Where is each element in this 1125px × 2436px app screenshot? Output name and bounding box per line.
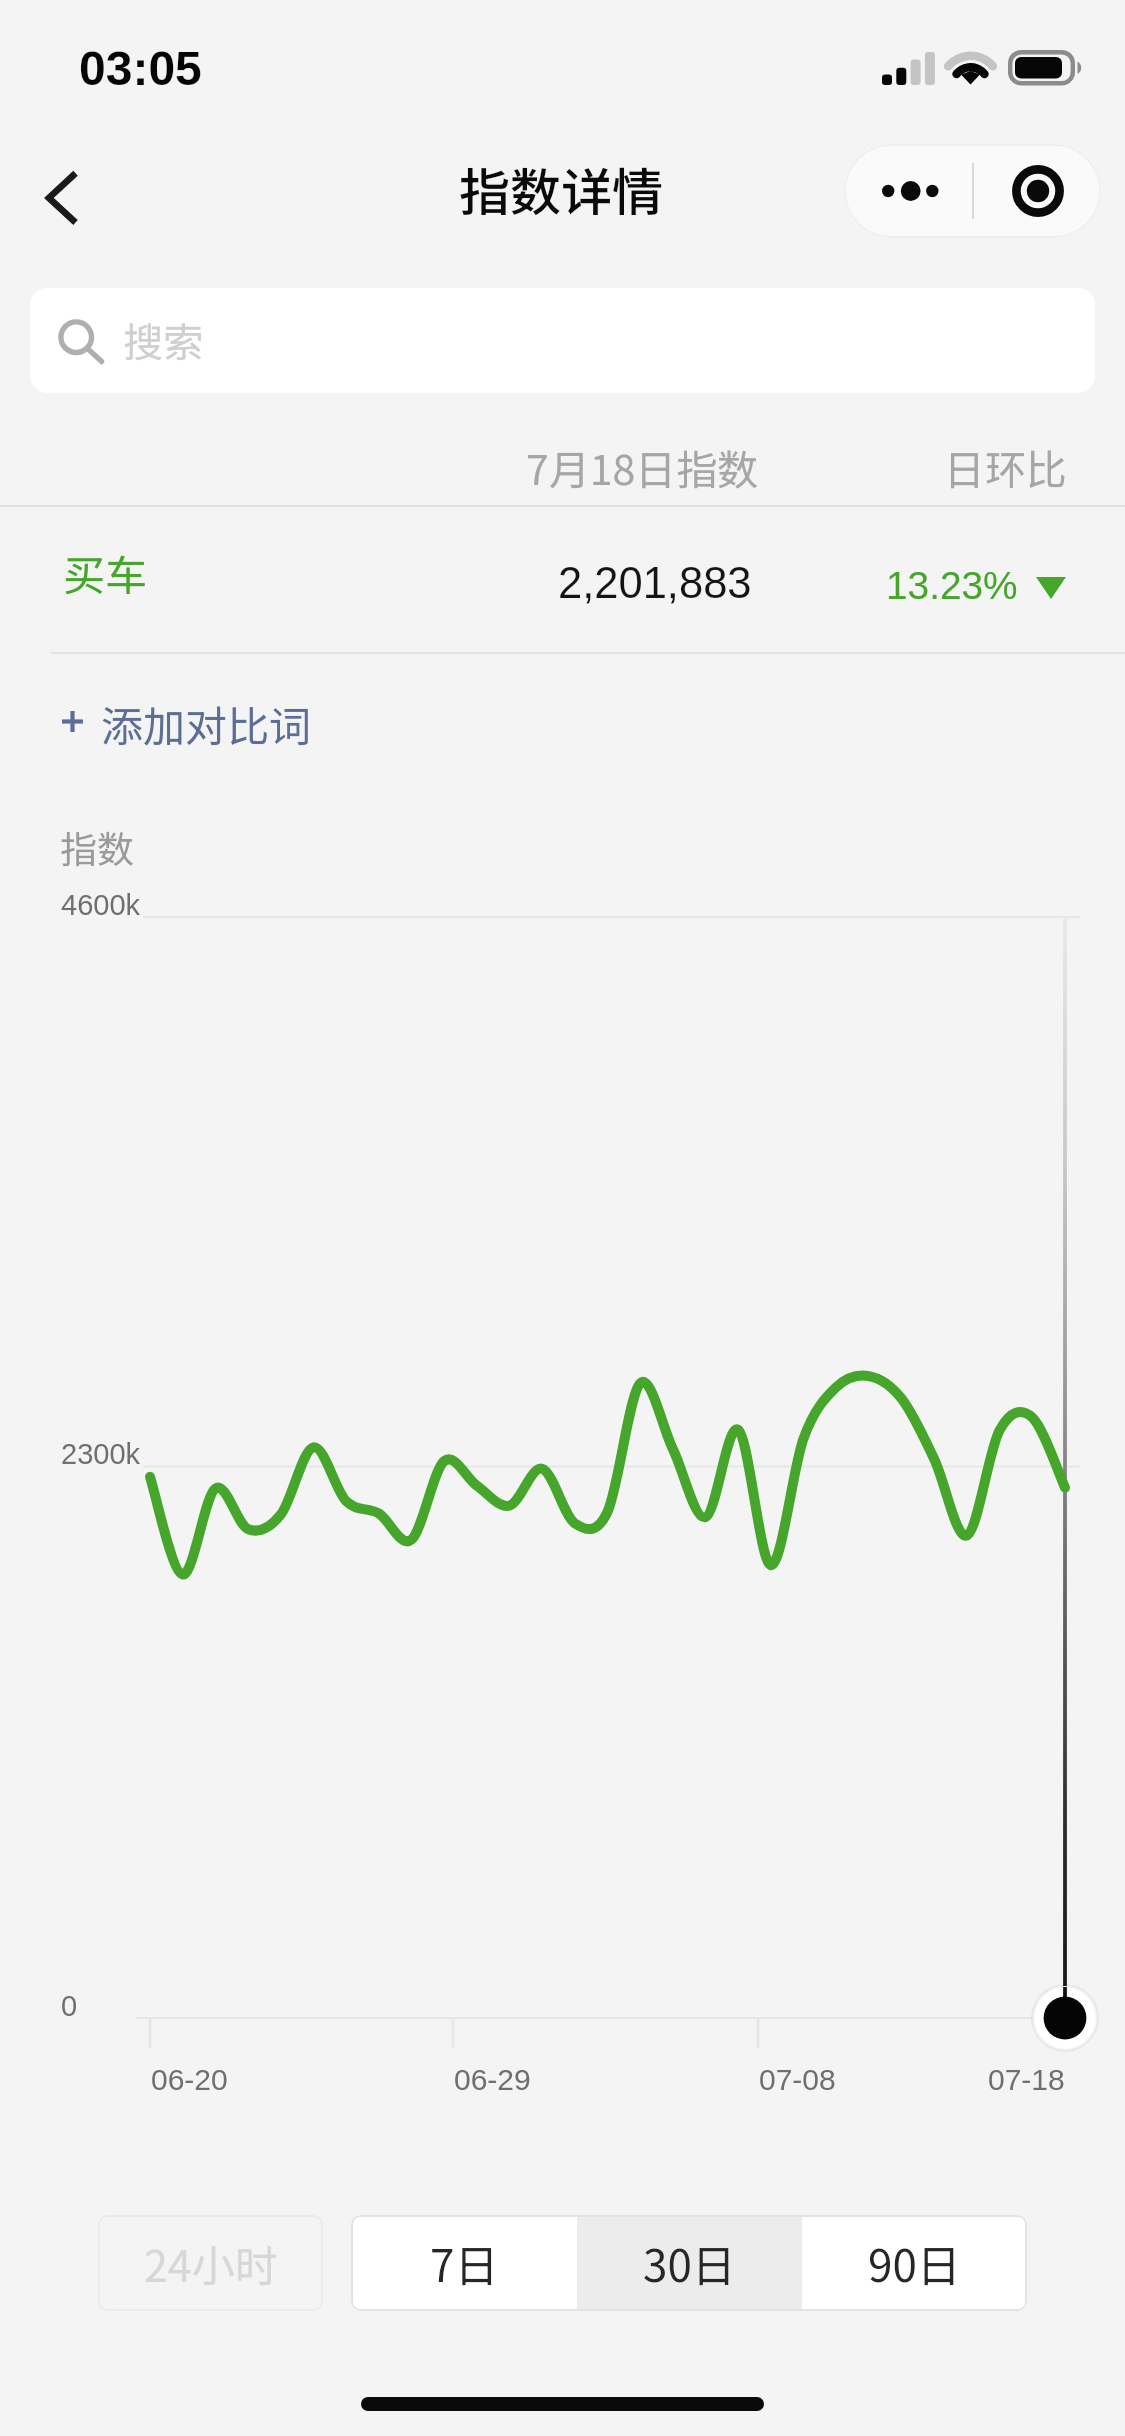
staticText: 2,201,883	[558, 559, 752, 608]
button[interactable]: Search	[30, 288, 1095, 393]
staticText: 07-18	[988, 2063, 1065, 2097]
button[interactable]: Close mini program	[974, 144, 1101, 238]
staticText: 13.23%	[886, 564, 1018, 607]
staticText: 搜索	[123, 311, 203, 369]
staticText: 07-08	[759, 2063, 836, 2097]
button[interactable]: 24小时	[98, 2215, 323, 2311]
staticText: 7日	[430, 2231, 499, 2295]
staticText: 2300k	[61, 1438, 141, 1470]
staticText: 30日	[643, 2231, 736, 2295]
staticText: 日环比	[944, 437, 1067, 496]
staticText: 06-29	[454, 2063, 531, 2097]
staticText: 06-20	[151, 2063, 228, 2097]
button[interactable]: 90日	[802, 2215, 1027, 2311]
staticText: 买车	[63, 542, 148, 603]
staticText: 0	[61, 1990, 78, 2022]
button[interactable]: 买车	[0, 511, 1125, 651]
button[interactable]: 30日	[577, 2215, 802, 2311]
button[interactable]: More options	[844, 144, 972, 238]
staticText: 4600k	[61, 889, 141, 921]
staticText: 03:05	[79, 42, 202, 96]
staticText: 24小时	[144, 2232, 278, 2294]
staticText: 90日	[868, 2231, 961, 2295]
button[interactable]: 7日	[351, 2215, 577, 2311]
staticText: 指数	[60, 820, 134, 874]
button[interactable]: 添加对比词	[0, 652, 1125, 800]
button[interactable]: Back	[14, 155, 100, 241]
staticText: 指数详情	[459, 152, 664, 226]
staticText: 添加对比词	[101, 693, 312, 754]
staticText: 7月18日指数	[526, 437, 759, 496]
